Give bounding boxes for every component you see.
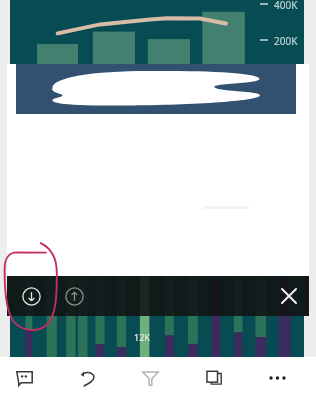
button[interactable]: Copy bbox=[191, 359, 237, 397]
button[interactable]: Undo bbox=[65, 359, 111, 397]
staticText: 12K bbox=[134, 331, 150, 343]
button[interactable]: Download bbox=[11, 276, 51, 316]
staticText: 200K bbox=[274, 34, 298, 48]
button[interactable]: Close bbox=[269, 276, 309, 316]
button[interactable]: Upload bbox=[54, 276, 94, 316]
button[interactable]: Filter bbox=[127, 359, 173, 397]
button[interactable]: Comment bbox=[1, 359, 47, 397]
staticText: 400K bbox=[274, 0, 298, 12]
button[interactable]: More bbox=[254, 359, 300, 397]
